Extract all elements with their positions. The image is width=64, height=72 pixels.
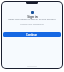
button[interactable]: Continue: [3, 32, 61, 37]
staticText: Enter your details to sign in to your ac…: [8, 18, 56, 21]
staticText: Continue: [26, 33, 38, 37]
staticText: Sign in: [27, 15, 38, 19]
staticText: Forgot your password?: [20, 23, 44, 26]
